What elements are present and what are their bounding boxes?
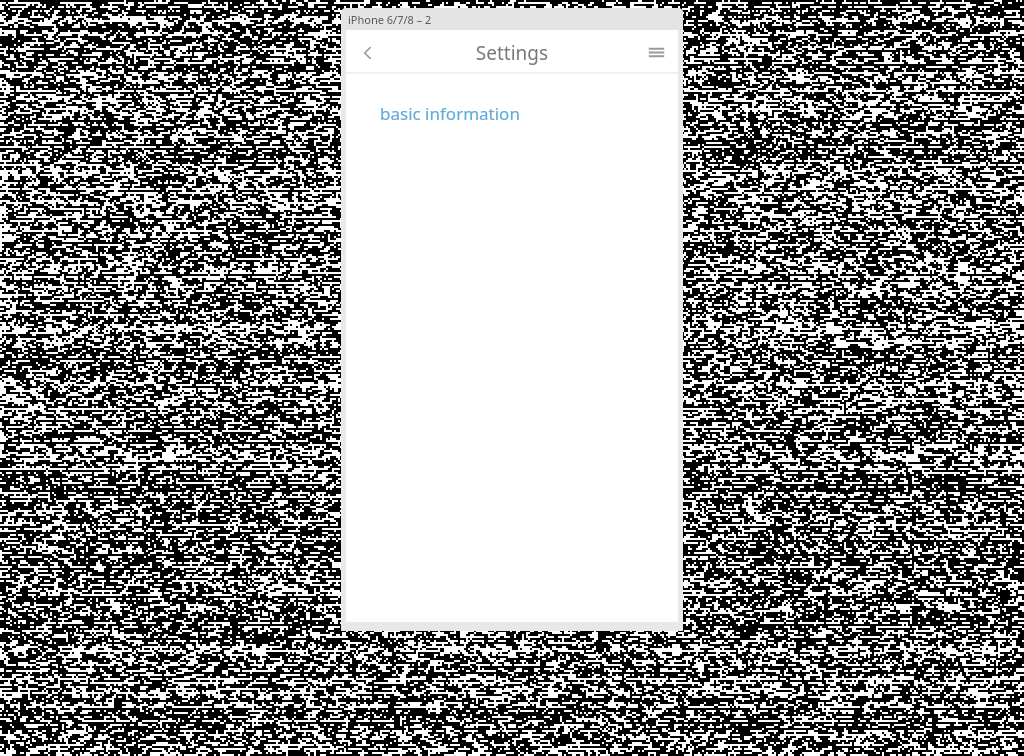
staticText: Settings <box>390 40 634 66</box>
staticText: iPhone 6/7/8 – 2 <box>348 12 432 27</box>
button[interactable]: Menu <box>634 30 678 75</box>
staticText: basic information <box>380 102 520 125</box>
button[interactable]: Back <box>346 30 390 75</box>
button[interactable]: basic information <box>374 98 526 129</box>
